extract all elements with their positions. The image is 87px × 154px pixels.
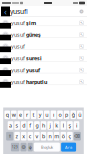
staticText: suresi <box>26 55 42 62</box>
button[interactable]: j <box>47 121 53 130</box>
button[interactable]: Clear <box>77 6 86 16</box>
button[interactable]: ı <box>51 110 56 119</box>
staticText: z <box>16 133 19 140</box>
button[interactable]: Dictation <box>28 143 33 151</box>
button[interactable]: Shift <box>6 132 13 140</box>
staticText: y <box>39 111 42 118</box>
staticText: ↖ <box>80 32 83 37</box>
staticText: 123 <box>12 145 18 149</box>
staticText: ç <box>68 133 71 140</box>
staticText: ↖ <box>80 68 83 72</box>
staticText: ↖ <box>80 80 83 84</box>
staticText: e <box>19 111 22 118</box>
button[interactable]: yusuf <box>0 52 87 64</box>
staticText: Boşluk <box>41 144 53 150</box>
staticText: ↖ <box>80 44 83 49</box>
staticText: d <box>22 122 25 129</box>
button[interactable]: Ara <box>61 143 76 152</box>
staticText: ⇧ <box>8 134 11 138</box>
button[interactable]: l <box>60 121 66 130</box>
button[interactable]: ö <box>60 132 66 140</box>
staticText: r <box>26 111 28 118</box>
staticText: q <box>6 111 9 118</box>
staticText: ö <box>62 133 65 140</box>
button[interactable]: t <box>31 110 36 119</box>
staticText: v <box>35 133 38 140</box>
staticText: ı <box>53 111 54 118</box>
staticText: yusuf <box>11 19 26 26</box>
button[interactable]: q <box>4 110 10 119</box>
button[interactable]: m <box>54 132 59 140</box>
staticText: w <box>12 111 16 118</box>
button[interactable]: ş <box>67 121 73 130</box>
staticText: l <box>63 122 64 129</box>
staticText: ✕ <box>80 10 82 13</box>
button[interactable]: yusuf <box>0 64 87 76</box>
button[interactable]: e <box>18 110 23 119</box>
button[interactable]: h <box>41 121 46 130</box>
button[interactable]: r <box>24 110 30 119</box>
button[interactable]: yusuf <box>10 6 77 16</box>
button[interactable]: u <box>44 110 50 119</box>
staticText: ↖ <box>80 56 83 60</box>
button[interactable]: w <box>11 110 17 119</box>
staticText: o <box>58 111 61 118</box>
staticText: ş <box>68 122 71 129</box>
button[interactable]: v <box>34 132 40 140</box>
button[interactable]: z <box>14 132 20 140</box>
staticText: ü <box>78 111 81 118</box>
staticText: güneş <box>26 31 41 38</box>
button[interactable]: ç <box>67 132 73 140</box>
staticText: yusuf <box>11 43 26 50</box>
button[interactable]: g <box>34 121 40 130</box>
button[interactable]: ü <box>77 110 83 119</box>
staticText: ‹ <box>4 5 7 18</box>
staticText: yusuf <box>11 67 26 74</box>
staticText: Ara <box>65 144 72 150</box>
button[interactable]: Numbers <box>11 143 19 151</box>
staticText: ğ <box>72 111 75 118</box>
staticText: j <box>50 122 51 129</box>
button[interactable]: b <box>41 132 46 140</box>
button[interactable]: Boşluk <box>34 143 60 152</box>
staticText: yusuf <box>11 55 26 62</box>
button[interactable]: Back <box>1 6 10 16</box>
staticText: x <box>22 133 25 140</box>
button[interactable]: yusuf <box>0 41 87 52</box>
staticText: yusuf <box>11 78 26 85</box>
button[interactable]: Delete <box>74 132 81 140</box>
button[interactable]: i <box>74 121 79 130</box>
staticText: yusuf <box>11 31 26 38</box>
button[interactable]: x <box>21 132 26 140</box>
button[interactable]: yusuf <box>0 17 87 29</box>
button[interactable]: s <box>14 121 20 130</box>
button[interactable]: yusuf <box>0 76 87 88</box>
staticText: yusuf <box>26 67 40 74</box>
staticText: a <box>9 122 12 129</box>
staticText: m <box>54 133 59 140</box>
staticText: şim <box>26 19 36 26</box>
staticText: s <box>16 122 19 129</box>
staticText: ☺ <box>21 145 25 149</box>
button[interactable]: o <box>57 110 63 119</box>
button[interactable]: c <box>27 132 33 140</box>
staticText: yusuf <box>10 7 26 16</box>
button[interactable]: a <box>8 121 13 130</box>
button[interactable]: Emoji <box>20 143 26 151</box>
button[interactable]: y <box>37 110 43 119</box>
staticText: n <box>49 133 52 140</box>
staticText: harputlu <box>26 78 47 85</box>
button[interactable]: d <box>21 121 26 130</box>
button[interactable]: k <box>54 121 59 130</box>
staticText: i <box>76 122 77 129</box>
button[interactable]: f <box>27 121 33 130</box>
staticText: g <box>35 122 38 129</box>
button[interactable]: n <box>47 132 53 140</box>
staticText: t <box>33 111 35 118</box>
staticText: ⌫ <box>74 134 80 138</box>
staticText: ψ <box>29 144 32 150</box>
button[interactable]: ğ <box>70 110 76 119</box>
button[interactable]: p <box>64 110 69 119</box>
button[interactable]: yusuf <box>0 29 87 41</box>
staticText: h <box>42 122 45 129</box>
